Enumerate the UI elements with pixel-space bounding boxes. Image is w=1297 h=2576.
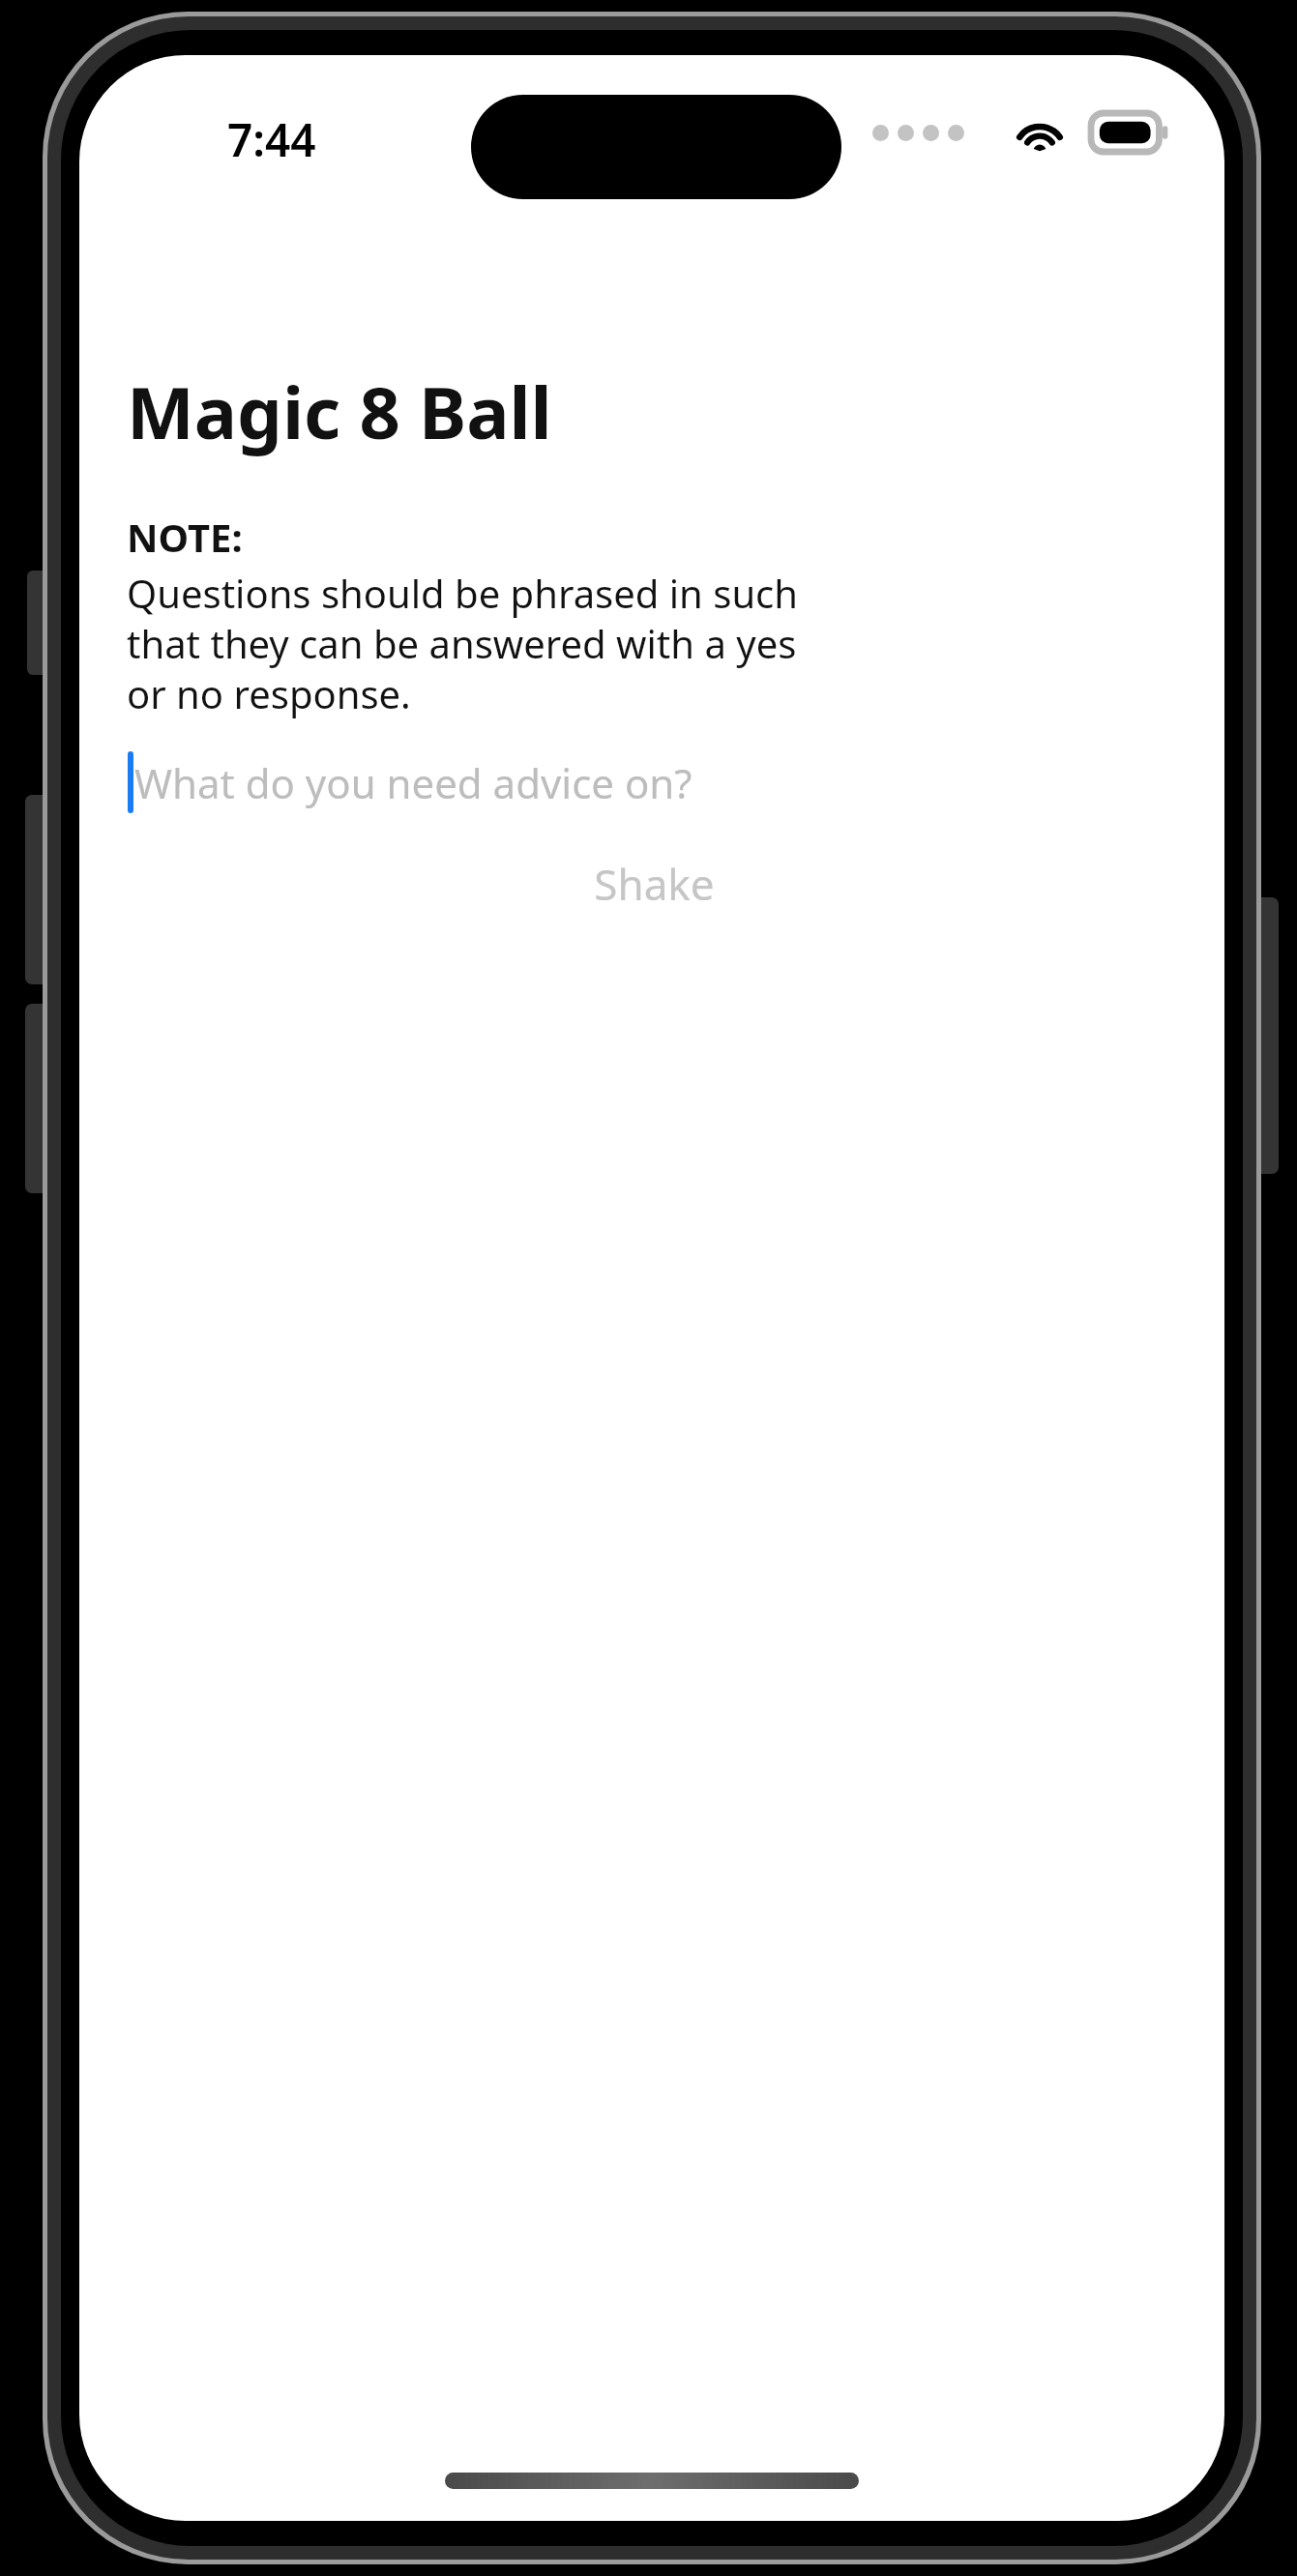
button[interactable]: Shake [127,846,1182,922]
other: Dynamic Island [471,95,841,199]
staticText: What do you need advice on? [134,755,693,810]
button[interactable]: What do you need advice on? [127,742,1182,823]
button[interactable]: Magic 8 Ball [127,363,552,460]
staticText: Shake [594,855,715,913]
other: Battery full [1091,113,1168,152]
staticText: NOTE: [127,511,243,563]
staticText: 7:44 [227,109,316,170]
staticText: Questions should be phrased in such that… [127,567,804,720]
other: Wi-Fi [1014,112,1066,153]
